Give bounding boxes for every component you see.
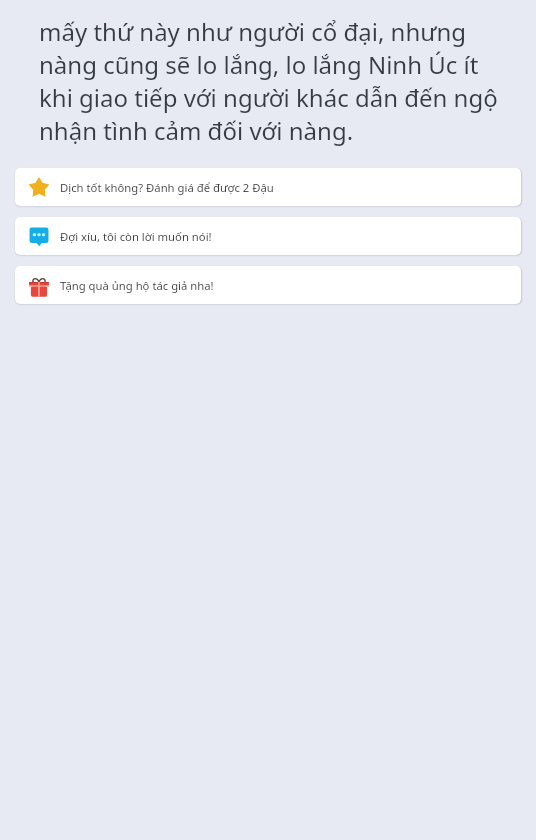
- staticText: Tặng quà ủng hộ tác giả nha!: [60, 278, 214, 293]
- staticText: mấy thứ này như người cổ đại, nhưng nàng…: [39, 15, 500, 147]
- other: Comment: [29, 224, 49, 248]
- other: Send gift: [29, 273, 49, 297]
- button[interactable]: Send gift: [15, 266, 521, 304]
- button[interactable]: Comment: [15, 217, 521, 255]
- staticText: Đợi xíu, tôi còn lời muốn nói!: [60, 229, 212, 244]
- button[interactable]: Rate translation: [15, 168, 521, 206]
- other: Rate translation: [29, 175, 49, 199]
- staticText: Dịch tốt không? Đánh giá để được 2 Đậu: [60, 180, 274, 195]
